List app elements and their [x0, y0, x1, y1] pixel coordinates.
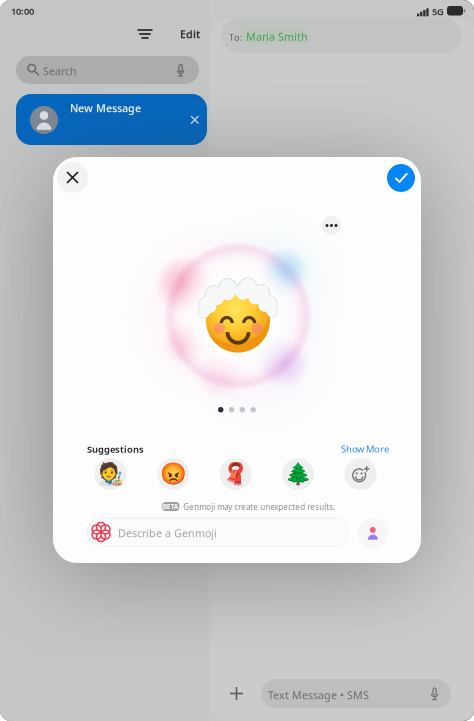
button[interactable]: Scarf suggestion	[220, 458, 252, 490]
button[interactable]: Browse more emoji	[345, 458, 377, 490]
button[interactable]: Close	[57, 162, 88, 193]
button[interactable]: Angry face suggestion	[157, 458, 189, 490]
staticText: To:	[229, 31, 243, 43]
staticText: Show More	[341, 443, 389, 455]
staticText: 😡	[160, 462, 187, 486]
staticText: 🧣	[222, 462, 249, 486]
staticText: Genmoji may create unexpected results.	[183, 501, 335, 512]
staticText: 🧑‍🎨	[97, 462, 124, 486]
button[interactable]: More options	[322, 216, 341, 235]
button[interactable]: Show More	[339, 442, 391, 456]
staticText: Maria Smith	[246, 29, 308, 44]
button[interactable]: Use Genmoji	[387, 164, 415, 192]
staticText: Search	[43, 64, 77, 78]
staticText: Text Message • SMS	[268, 688, 369, 702]
button[interactable]: Artist suggestion	[95, 458, 127, 490]
staticText: 5G	[432, 5, 444, 18]
staticText: Edit	[180, 27, 200, 41]
button[interactable]: Filter conversations	[130, 21, 160, 47]
staticText: 10:00	[11, 5, 34, 17]
staticText: BETA	[163, 502, 179, 511]
staticText: Suggestions	[87, 443, 144, 455]
staticText: 🌲	[285, 462, 312, 486]
staticText: Describe a Genmoji	[118, 526, 217, 540]
button[interactable]: Edit	[172, 21, 208, 47]
staticText: New Message	[70, 101, 141, 115]
button[interactable]: Evergreen tree suggestion	[282, 458, 314, 490]
button[interactable]: Choose a person	[358, 518, 388, 548]
